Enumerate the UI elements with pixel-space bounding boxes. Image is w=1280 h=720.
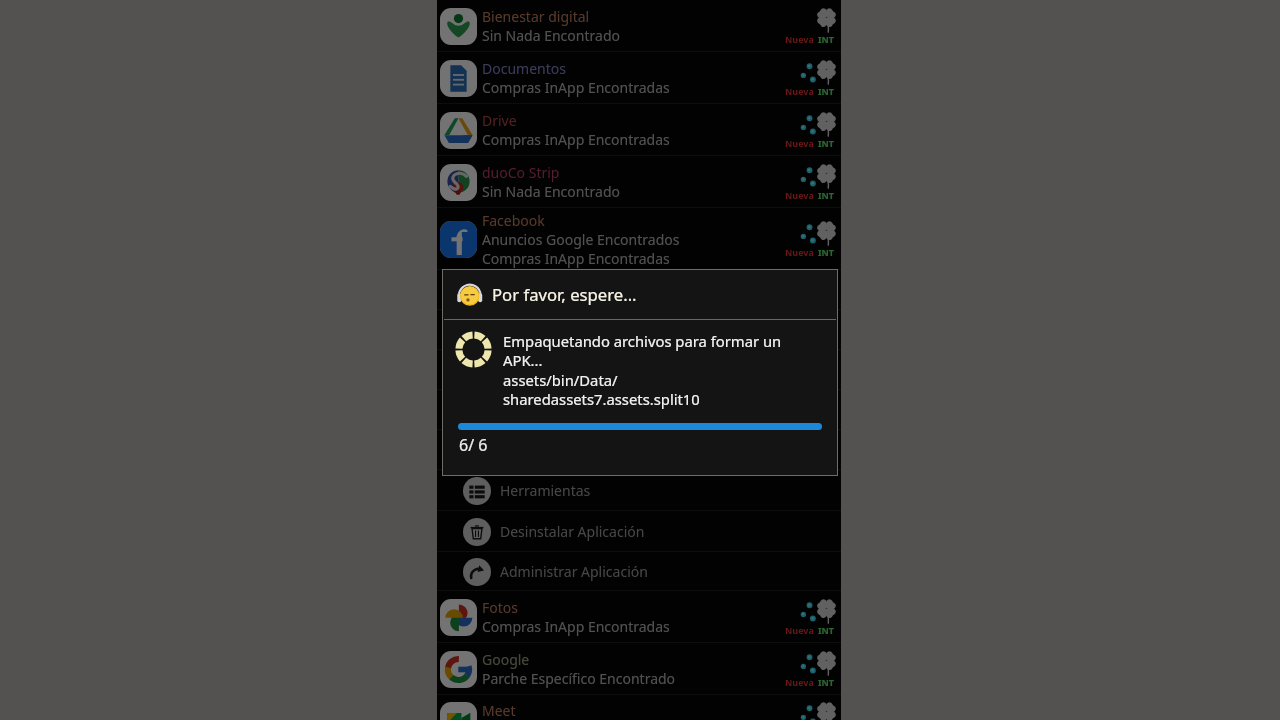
other: Buscar en Play Store: [463, 276, 491, 304]
button[interactable]: INT: [814, 652, 838, 688]
staticText: Buscar en Play Store: [500, 281, 634, 300]
staticText: INT: [818, 137, 835, 149]
staticText: Nueva: [785, 676, 814, 688]
other: Compartir APK: [463, 356, 491, 384]
staticText: assets/bin/Data/ sharedassets7.assets.sp…: [503, 370, 700, 409]
staticText: duoCo Strip: [482, 163, 560, 182]
other: Detalles: [463, 396, 491, 424]
button[interactable]: Nueva: [785, 61, 814, 97]
staticText: Por favor, espere...: [492, 283, 637, 306]
other: Herramientas: [463, 477, 491, 505]
button[interactable]: Buscar en Play Store: [437, 270, 841, 310]
staticText: Parche Específico Encontrado: [482, 669, 676, 688]
staticText: Drive: [482, 111, 517, 130]
button[interactable]: Detalles: [437, 390, 841, 430]
staticText: Nueva: [785, 33, 814, 45]
button[interactable]: Desinstalar Aplicación: [437, 511, 841, 552]
staticText: Desinstalar Aplicación: [500, 522, 645, 541]
staticText: Compras InApp Encontradas: [482, 78, 670, 97]
button[interactable]: duoCo Strip: [437, 156, 841, 208]
staticText: INT: [818, 624, 835, 636]
staticText: INT: [818, 676, 835, 688]
button[interactable]: Compartir APK: [437, 350, 841, 390]
staticText: Compras InApp Encontradas: [482, 617, 670, 636]
button[interactable]: Facebook: [437, 208, 841, 270]
other: Please wait: [458, 282, 483, 307]
button[interactable]: Fotos: [437, 591, 841, 643]
button[interactable]: INT: [814, 61, 838, 97]
button[interactable]: INT: [814, 703, 838, 720]
button[interactable]: Nueva: [785, 703, 814, 720]
button[interactable]: Google: [437, 643, 841, 695]
staticText: Nueva: [785, 137, 814, 149]
staticText: INT: [818, 85, 835, 97]
button[interactable]: INT: [814, 113, 838, 149]
button[interactable]: Nueva: [785, 165, 814, 201]
button[interactable]: Nueva: [785, 600, 814, 636]
other: Desinstalar Aplicación: [463, 518, 491, 546]
staticText: Facebook: [482, 211, 545, 230]
staticText: Sin Nada Encontrado: [482, 182, 620, 201]
staticText: Anuncios Google Encontrados: [482, 230, 680, 249]
button[interactable]: Permisos: [437, 430, 841, 470]
staticText: Herramientas: [500, 481, 591, 500]
staticText: Meet: [482, 701, 516, 720]
staticText: Nueva: [785, 189, 814, 201]
button[interactable]: INT: [814, 222, 838, 258]
staticText: Compras InApp Encontradas: [482, 249, 670, 268]
staticText: Sin Nada Encontrado: [482, 26, 620, 45]
button[interactable]: INT: [814, 600, 838, 636]
staticText: Nueva: [785, 85, 814, 97]
button[interactable]: Documentos: [437, 52, 841, 104]
staticText: INT: [818, 246, 835, 258]
button[interactable]: Herramientas: [437, 470, 841, 511]
staticText: Extraer APK: [500, 321, 577, 340]
button[interactable]: Bienestar digital: [437, 0, 841, 52]
staticText: Nueva: [785, 624, 814, 636]
staticText: Google: [482, 650, 530, 669]
button[interactable]: Nueva: [785, 652, 814, 688]
staticText: Administrar Aplicación: [500, 562, 648, 581]
button[interactable]: Nueva: [785, 222, 814, 258]
button[interactable]: INT: [814, 9, 838, 45]
button[interactable]: Nueva: [785, 113, 814, 149]
button[interactable]: Extraer APK: [437, 310, 841, 350]
button[interactable]: Meet: [437, 694, 841, 720]
button[interactable]: INT: [814, 165, 838, 201]
staticText: Fotos: [482, 598, 518, 617]
staticText: Compras InApp Encontradas: [482, 130, 670, 149]
button[interactable]: Drive: [437, 104, 841, 156]
other: Administrar Aplicación: [463, 558, 491, 586]
staticText: Documentos: [482, 59, 566, 78]
other: Permisos: [463, 436, 491, 464]
staticText: INT: [818, 33, 835, 45]
other: Loading: [455, 331, 492, 368]
staticText: 6/ 6: [459, 434, 488, 456]
staticText: Nueva: [785, 246, 814, 258]
staticText: Detalles: [500, 401, 553, 420]
staticText: INT: [818, 189, 835, 201]
button[interactable]: Nueva: [785, 9, 814, 45]
staticText: Bienestar digital: [482, 7, 590, 26]
other: Extraer APK: [463, 316, 491, 344]
staticText: Compartir APK: [500, 361, 597, 380]
button[interactable]: Administrar Aplicación: [437, 552, 841, 591]
staticText: Empaquetando archivos para formar un APK…: [503, 331, 793, 370]
